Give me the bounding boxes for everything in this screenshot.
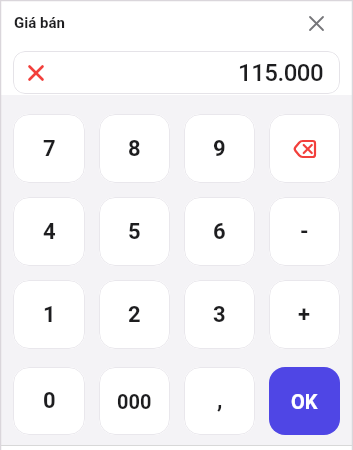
button[interactable]: - (269, 197, 340, 266)
button[interactable] (302, 9, 331, 38)
staticText: 4 (43, 219, 56, 245)
staticText: OK (291, 390, 318, 413)
button[interactable]: 4 (13, 197, 85, 266)
staticText: 0 (43, 388, 56, 414)
staticText: 5 (128, 219, 141, 245)
staticText: 9 (213, 136, 226, 162)
button[interactable]: 8 (99, 114, 170, 183)
button[interactable]: 3 (184, 280, 255, 349)
staticText: - (300, 219, 309, 245)
staticText: , (217, 388, 223, 414)
staticText: 2 (128, 302, 141, 328)
button[interactable]: 5 (99, 197, 170, 266)
staticText: 3 (213, 302, 226, 328)
staticText: 6 (213, 219, 226, 245)
button[interactable]: , (184, 367, 255, 435)
button[interactable]: 0 (13, 367, 85, 435)
button[interactable]: 2 (99, 280, 170, 349)
button[interactable]: 7 (13, 114, 85, 183)
staticText: 115.000 (238, 59, 324, 87)
button[interactable]: 1 (13, 280, 85, 349)
button[interactable]: 115.000 (13, 51, 340, 94)
staticText: + (298, 302, 311, 328)
button[interactable]: + (269, 280, 340, 349)
staticText: 000 (117, 390, 152, 413)
staticText: 7 (43, 136, 56, 162)
staticText: 1 (43, 302, 56, 328)
staticText: Giá bán (14, 14, 65, 32)
button[interactable] (269, 114, 340, 183)
staticText: 8 (128, 136, 141, 162)
button[interactable]: 000 (99, 367, 170, 435)
button[interactable]: 9 (184, 114, 255, 183)
button[interactable]: 6 (184, 197, 255, 266)
button[interactable]: OK (269, 367, 340, 435)
